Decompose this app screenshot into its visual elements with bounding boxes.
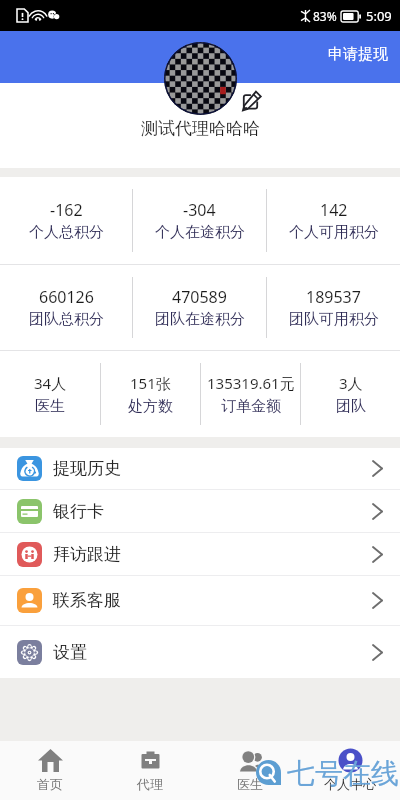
staticText: 银行卡 <box>53 501 104 522</box>
button[interactable]: 142 <box>267 177 400 264</box>
button[interactable]: 660126 <box>0 265 132 350</box>
staticText: 订单金额 <box>221 397 281 416</box>
staticText: 660126 <box>39 286 94 308</box>
button[interactable]: 设置 <box>0 626 400 678</box>
staticText: 151张 <box>130 373 171 393</box>
button[interactable]: 151张 <box>101 351 200 437</box>
staticText: 83% <box>313 8 337 24</box>
staticText: 测试代理哈哈哈 <box>141 118 260 139</box>
staticText: 个人总积分 <box>29 223 104 242</box>
staticText: 七号在线 <box>287 756 399 791</box>
button[interactable]: -304 <box>133 177 266 264</box>
button[interactable]: Avatar <box>164 42 237 115</box>
button[interactable]: 首页 <box>0 741 100 800</box>
button[interactable]: 189537 <box>267 265 400 350</box>
staticText: 142 <box>320 199 348 221</box>
staticText: 个人可用积分 <box>289 223 379 242</box>
button[interactable]: 470589 <box>133 265 266 350</box>
button[interactable]: 联系客服 <box>0 576 400 625</box>
staticText: 提现历史 <box>53 458 121 479</box>
staticText: 团队在途积分 <box>155 310 245 329</box>
button[interactable]: 银行卡 <box>0 490 400 532</box>
button[interactable]: 医生 <box>200 741 300 800</box>
staticText: 申请提现 <box>328 45 388 64</box>
staticText: 医生 <box>237 776 263 792</box>
staticText: 医生 <box>35 397 65 416</box>
button[interactable]: -162 <box>0 177 132 264</box>
button[interactable]: 34人 <box>0 351 100 437</box>
staticText: 470589 <box>172 286 227 308</box>
staticText: -162 <box>50 199 83 221</box>
staticText: 拜访跟进 <box>53 544 121 565</box>
staticText: 189537 <box>306 286 361 308</box>
staticText: 135319.61元 <box>207 373 295 393</box>
button[interactable]: Edit profile <box>240 91 261 112</box>
staticText: 团队总积分 <box>29 310 104 329</box>
staticText: 34人 <box>34 373 67 393</box>
staticText: 处方数 <box>128 397 173 416</box>
button[interactable]: 拜访跟进 <box>0 533 400 575</box>
staticText: 3人 <box>339 373 363 393</box>
staticText: 个人在途积分 <box>155 223 245 242</box>
button[interactable]: 3人 <box>301 351 400 437</box>
staticText: 首页 <box>37 776 63 792</box>
staticText: 团队可用积分 <box>289 310 379 329</box>
button[interactable]: 申请提现 <box>324 41 392 68</box>
staticText: 联系客服 <box>53 590 121 611</box>
staticText: 个人中心 <box>324 776 376 792</box>
button[interactable]: 代理 <box>100 741 200 800</box>
button[interactable]: 提现历史 <box>0 448 400 489</box>
button[interactable]: 135319.61元 <box>201 351 300 437</box>
staticText: 代理 <box>137 776 163 792</box>
staticText: 团队 <box>336 397 366 416</box>
button[interactable]: 个人中心 <box>300 741 400 800</box>
staticText: 设置 <box>53 642 87 663</box>
staticText: 5:09 <box>366 7 392 25</box>
staticText: -304 <box>183 199 216 221</box>
